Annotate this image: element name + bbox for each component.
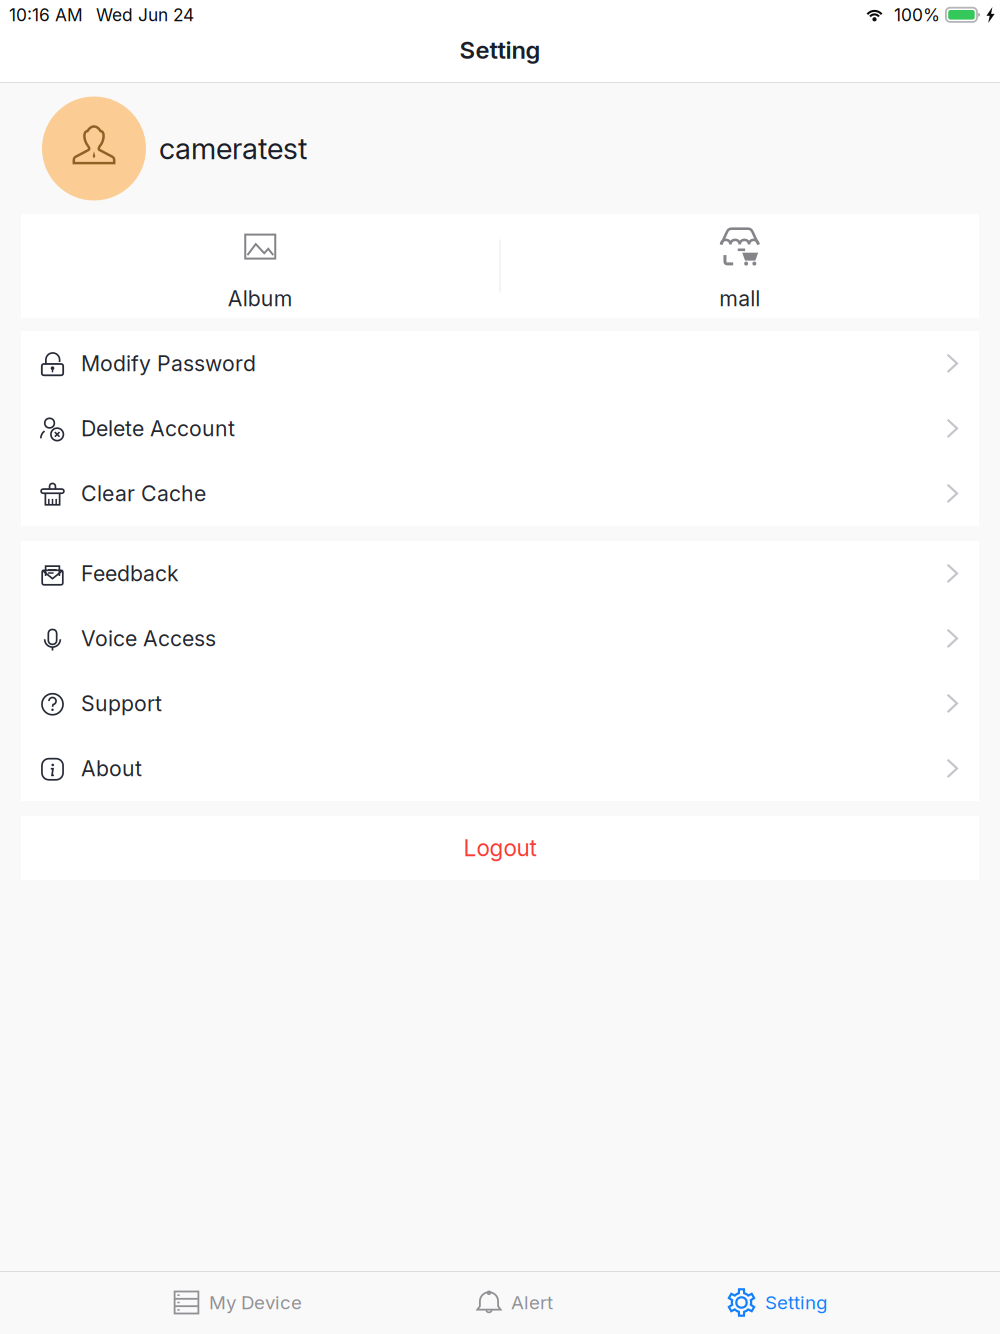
staticText: Setting [765, 1291, 827, 1314]
button[interactable]: Feedback [21, 541, 979, 606]
staticText: Delete Account [81, 416, 235, 441]
button[interactable]: My Device [173, 1271, 302, 1333]
button[interactable]: About [21, 736, 979, 801]
staticText: Setting [459, 35, 540, 64]
button[interactable]: Alert [476, 1271, 553, 1333]
button[interactable]: Support [21, 671, 979, 736]
staticText: mall [719, 286, 760, 311]
button[interactable]: Voice Access [21, 606, 979, 671]
staticText: Modify Password [81, 351, 256, 376]
staticText: About [81, 756, 142, 781]
staticText: My Device [209, 1291, 302, 1314]
button[interactable]: Delete Account [21, 396, 979, 461]
staticText: Logout [463, 834, 536, 862]
staticText: Album [228, 286, 293, 311]
button[interactable]: mall [500, 214, 979, 318]
staticText: cameratest [159, 131, 307, 166]
button[interactable]: Modify Password [21, 331, 979, 396]
button[interactable]: Album [21, 214, 499, 318]
staticText: Alert [511, 1291, 553, 1314]
button[interactable]: Clear Cache [21, 461, 979, 526]
staticText: 100% [894, 4, 940, 25]
staticText: Support [81, 691, 162, 716]
staticText: Voice Access [81, 626, 216, 651]
button[interactable]: Logout [21, 816, 979, 880]
staticText: 10:16 AM [9, 4, 83, 25]
button[interactable]: Setting [727, 1271, 827, 1333]
staticText: Wed Jun 24 [96, 4, 194, 25]
staticText: Clear Cache [81, 481, 206, 506]
staticText: Feedback [81, 561, 179, 586]
